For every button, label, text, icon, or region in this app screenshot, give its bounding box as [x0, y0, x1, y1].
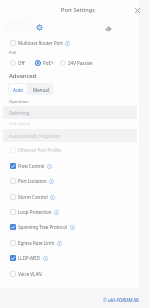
staticText: Auto: [13, 87, 24, 93]
staticText: Multicast Router Port: [18, 40, 63, 46]
button[interactable]: Loop Protection: [10, 206, 59, 218]
staticText: Manual: [33, 87, 49, 93]
staticText: Port Isolation: [18, 178, 47, 184]
staticText: Voice VLAN: [18, 271, 42, 277]
button[interactable]: Auto: [9, 84, 27, 95]
staticText: Ethernet Port Profile: [18, 147, 62, 153]
button[interactable]: LLDP-MED: [10, 252, 48, 264]
button[interactable]: Spanning Tree Protocol: [10, 221, 75, 233]
button[interactable]: Port Isolation: [10, 175, 54, 187]
staticText: Port Settings: [61, 6, 95, 14]
button[interactable]: PoE+: [35, 57, 54, 69]
button[interactable]: Settings: [36, 24, 43, 31]
button[interactable]: Flow Control: [10, 160, 52, 172]
staticText: Link Speed: [9, 121, 31, 127]
staticText: PoE+: [43, 60, 54, 66]
button[interactable]: Storm Control: [10, 191, 55, 203]
staticText: Operation: [9, 99, 29, 105]
button[interactable]: Ethernet Port Profile: [10, 144, 62, 156]
staticText: © ubi-FORUM.NL: [103, 297, 140, 303]
staticText: Spanning Tree Protocol: [18, 224, 68, 230]
staticText: PoE: [9, 50, 17, 56]
staticText: Switching: [9, 110, 30, 116]
staticText: 24V Passive: [68, 60, 93, 66]
button[interactable]: Egress Rate Limit: [10, 237, 62, 249]
button[interactable]: Close: [133, 6, 142, 15]
button[interactable]: Off: [10, 57, 25, 69]
staticText: Off: [18, 60, 25, 66]
staticText: Flow Control: [18, 163, 45, 169]
button[interactable]: Manual: [28, 84, 53, 95]
button[interactable]: Voice VLAN: [10, 268, 42, 280]
button[interactable]: 24V Passive: [60, 57, 93, 69]
staticText: Egress Rate Limit: [18, 240, 55, 246]
button[interactable]: Devices: [104, 24, 112, 32]
staticText: Advanced: [9, 72, 37, 80]
staticText: Storm Control: [18, 194, 48, 200]
staticText: LLDP-MED: [18, 255, 41, 261]
staticText: Loop Protection: [18, 209, 52, 215]
button[interactable]: Multicast Router Port: [10, 37, 70, 49]
staticText: Automatically Negotiate: [9, 133, 60, 139]
